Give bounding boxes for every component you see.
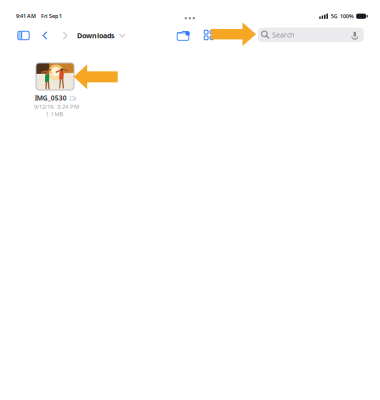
button[interactable]: Forward <box>56 25 74 45</box>
staticText: Downloads <box>77 31 115 40</box>
button[interactable]: Hide Sidebar <box>12 25 34 45</box>
staticText: IMG_0530 <box>35 93 67 102</box>
staticText: Fri Sep 1 <box>41 12 62 20</box>
staticText: 1.1 MB <box>46 110 64 118</box>
staticText: Search <box>272 30 294 40</box>
button[interactable]: New Folder <box>172 25 194 45</box>
button[interactable]: Back <box>36 25 54 45</box>
staticText: 9/12/18, 3:24 PM <box>34 103 79 110</box>
staticText: 9:41 AM <box>16 12 36 20</box>
button[interactable]: Search <box>258 28 364 42</box>
staticText: 5G <box>331 13 338 20</box>
button[interactable]: Downloads <box>77 25 125 45</box>
staticText: 100% <box>340 13 354 20</box>
button[interactable]: View Options <box>198 25 220 45</box>
